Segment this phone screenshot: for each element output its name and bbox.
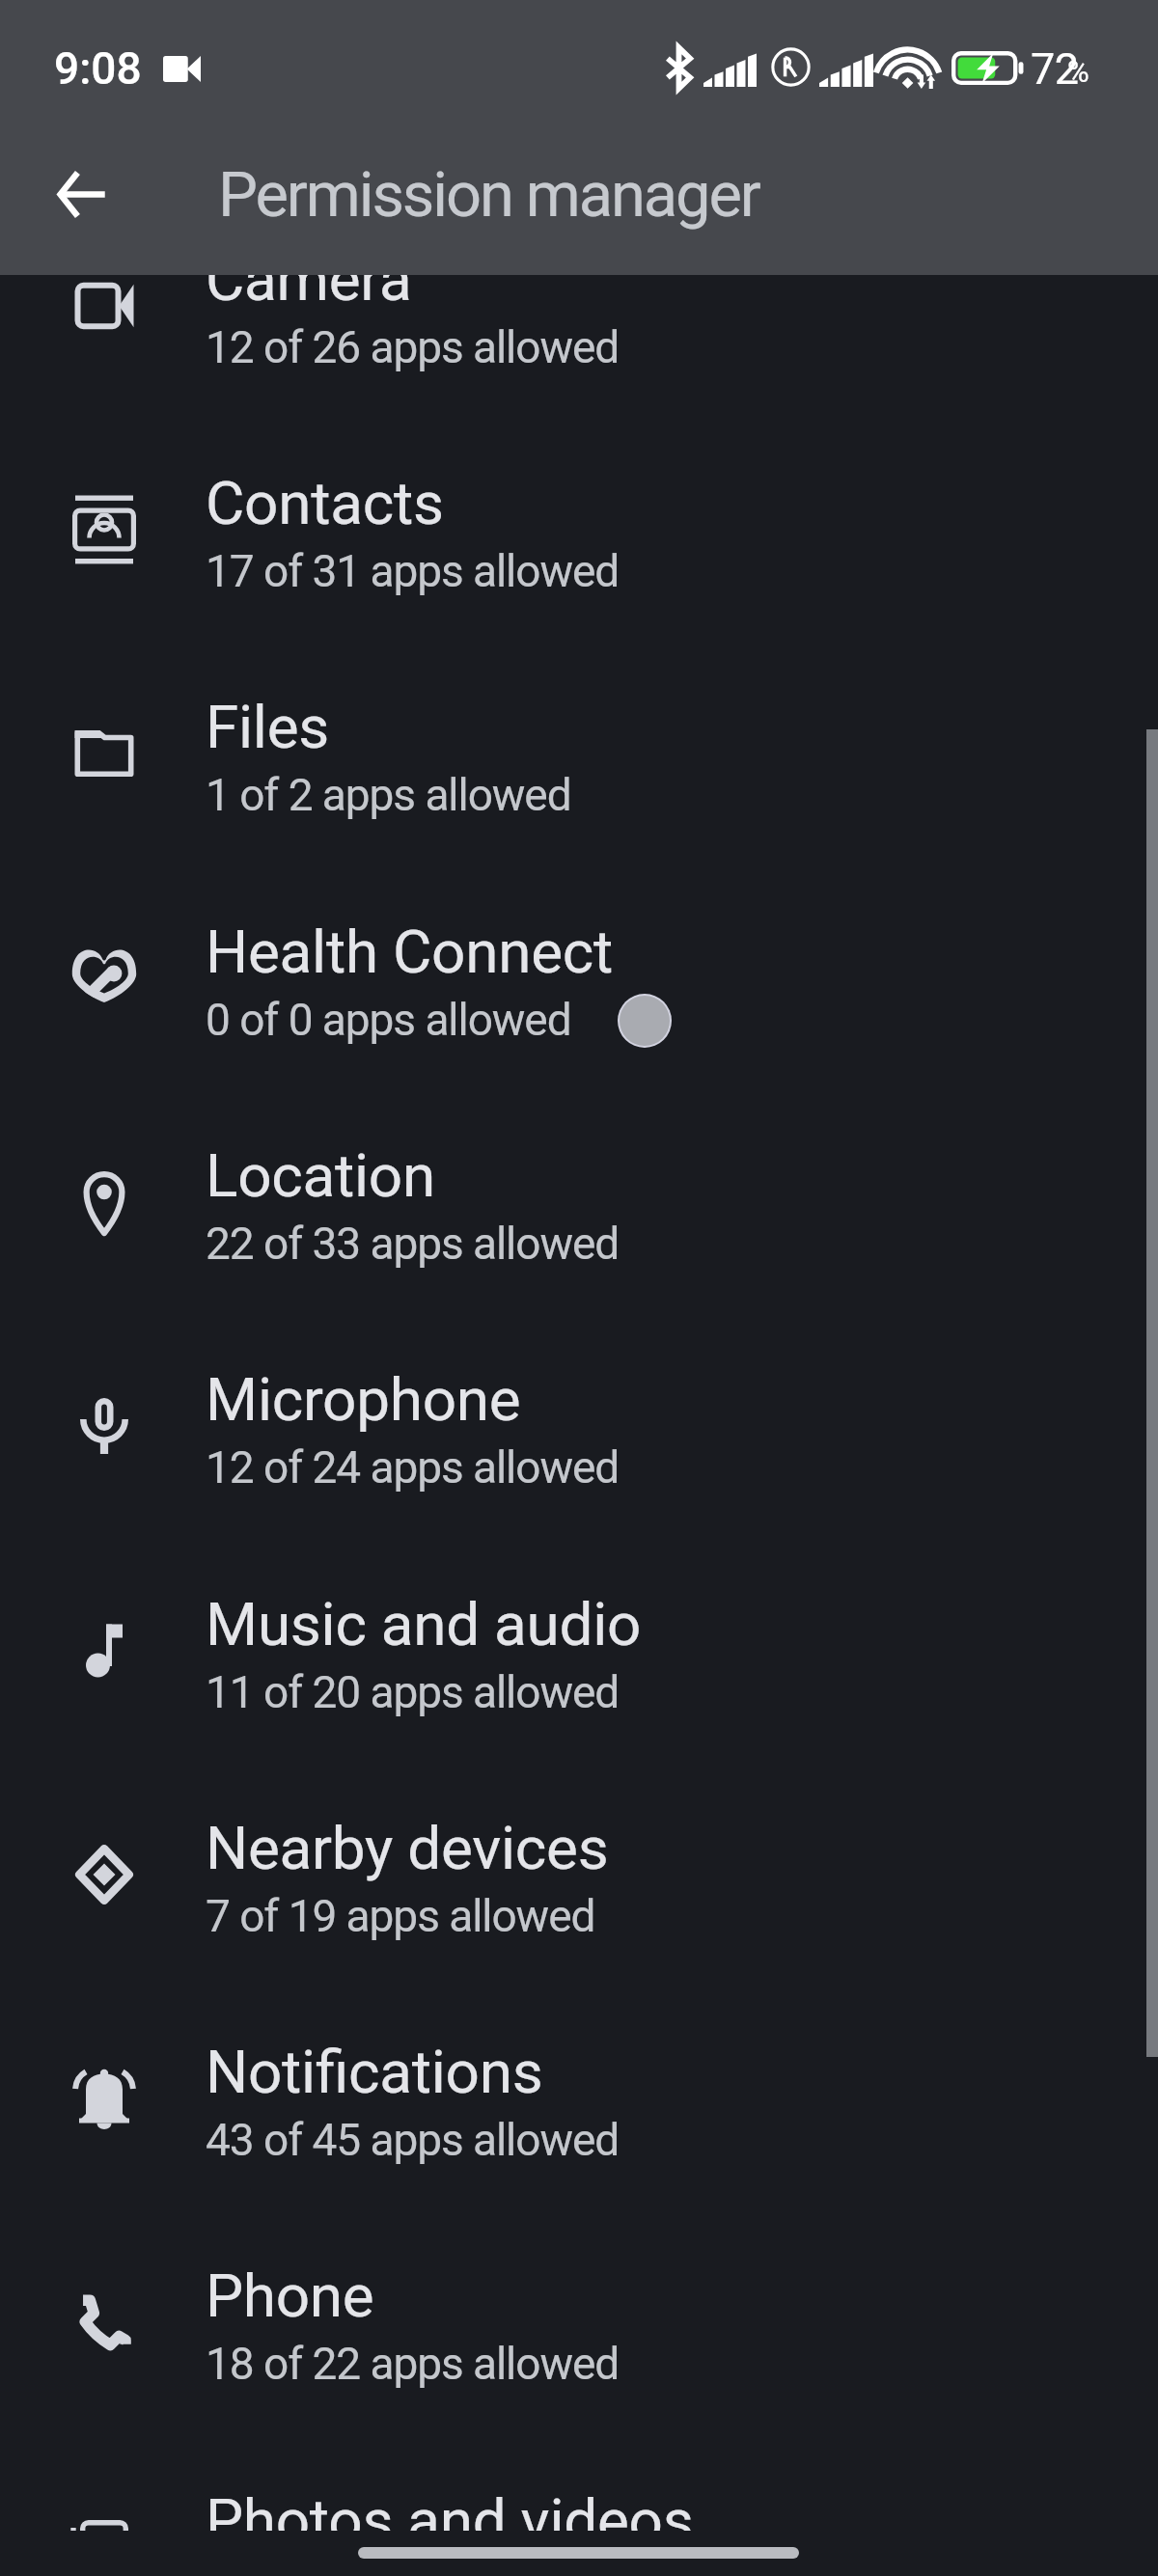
- staticText: 12 of 24 apps allowed: [206, 1441, 620, 1494]
- staticText: Photos and videos: [206, 2485, 694, 2531]
- button[interactable]: Music and audio: [0, 1535, 1158, 1759]
- button[interactable]: Nearby devices: [0, 1759, 1158, 1983]
- staticText: 7 of 19 apps allowed: [206, 1890, 595, 1942]
- button[interactable]: Navigate up: [35, 148, 127, 240]
- staticText: Microphone: [206, 1364, 521, 1435]
- staticText: 72: [1031, 43, 1079, 95]
- button[interactable]: Phone: [0, 2206, 1158, 2430]
- staticText: 43 of 45 apps allowed: [206, 2114, 620, 2166]
- staticText: 17 of 31 apps allowed: [206, 545, 620, 597]
- staticText: 18 of 22 apps allowed: [206, 2338, 620, 2390]
- button[interactable]: Location: [0, 1086, 1158, 1310]
- staticText: 9:08: [54, 42, 142, 95]
- staticText: 12 of 26 apps allowed: [206, 321, 620, 373]
- staticText: Notifications: [206, 2037, 543, 2107]
- button[interactable]: Health Connect: [0, 863, 1158, 1086]
- staticText: Phone: [206, 2261, 374, 2331]
- staticText: Contacts: [206, 468, 444, 538]
- staticText: 11 of 20 apps allowed: [206, 1666, 620, 1718]
- staticText: Permission manager: [218, 158, 759, 232]
- staticText: Nearby devices: [206, 1813, 609, 1883]
- button[interactable]: Contacts: [0, 414, 1158, 638]
- staticText: 1 of 2 apps allowed: [206, 769, 571, 821]
- button[interactable]: Camera: [0, 190, 1158, 414]
- staticText: Camera: [206, 244, 412, 315]
- staticText: Location: [206, 1140, 435, 1211]
- staticText: %: [1067, 54, 1089, 89]
- button[interactable]: Notifications: [0, 1983, 1158, 2206]
- staticText: 0 of 0 apps allowed: [206, 994, 571, 1046]
- staticText: Health Connect: [206, 917, 614, 987]
- button[interactable]: Files: [0, 638, 1158, 862]
- staticText: 22 of 33 apps allowed: [206, 1218, 620, 1270]
- staticText: Music and audio: [206, 1589, 642, 1659]
- button[interactable]: Photos and videos: [0, 2431, 1158, 2531]
- staticText: Files: [206, 692, 330, 762]
- button[interactable]: Microphone: [0, 1310, 1158, 1534]
